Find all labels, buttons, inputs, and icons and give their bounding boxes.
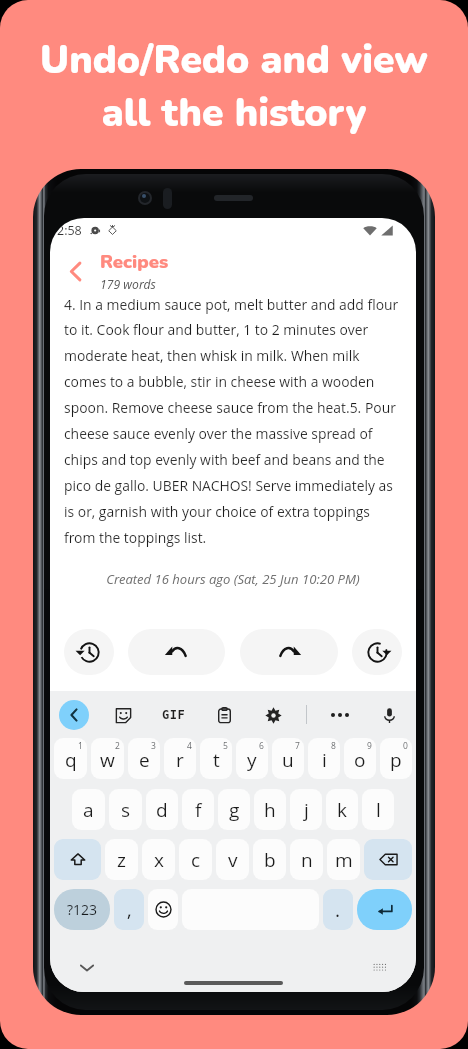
button[interactable]: More options: [324, 699, 356, 731]
button[interactable]: .: [323, 889, 353, 930]
button[interactable]: 0: [380, 738, 412, 779]
button[interactable]: Enter: [357, 889, 412, 930]
button[interactable]: Switch keyboard: [367, 956, 391, 980]
button[interactable]: Hide keyboard: [75, 956, 99, 980]
button[interactable]: c: [179, 839, 212, 880]
other: Backspace: [379, 850, 398, 869]
button[interactable]: a: [72, 789, 105, 830]
button[interactable]: 9: [344, 738, 376, 779]
button[interactable]: ,: [114, 889, 144, 930]
button[interactable]: Close toolbar: [59, 700, 89, 730]
button[interactable]: h: [254, 789, 286, 830]
button[interactable]: Redo: [240, 629, 338, 675]
staticText: b: [264, 847, 276, 873]
button[interactable]: Shift: [54, 839, 101, 880]
staticText: 7: [295, 740, 300, 752]
staticText: 4. In a medium sauce pot, melt butter an…: [64, 295, 402, 547]
staticText: 8: [331, 740, 336, 752]
button[interactable]: Back: [55, 251, 95, 291]
button[interactable]: v: [216, 839, 249, 880]
staticText: c: [191, 847, 201, 873]
staticText: Recipes: [100, 249, 169, 274]
staticText: e: [139, 747, 150, 773]
button[interactable]: f: [182, 789, 214, 830]
button[interactable]: 6: [236, 738, 268, 779]
button[interactable]: Backspace: [364, 839, 412, 880]
other: Emoji: [155, 901, 172, 918]
staticText: w: [100, 747, 115, 773]
button[interactable]: l: [362, 789, 394, 830]
staticText: i: [322, 747, 327, 773]
staticText: 9: [367, 740, 372, 752]
staticText: 4: [187, 740, 192, 752]
button[interactable]: n: [290, 839, 323, 880]
staticText: j: [304, 797, 309, 823]
button[interactable]: Restore version: [352, 629, 402, 675]
button[interactable]: g: [218, 789, 250, 830]
button[interactable]: GIF: [157, 698, 191, 732]
staticText: x: [154, 847, 164, 873]
staticText: 3: [151, 740, 156, 752]
button[interactable]: Version history: [64, 629, 114, 675]
button[interactable]: Clipboard: [208, 699, 240, 731]
staticText: 1: [78, 740, 83, 752]
staticText: 2:58: [57, 222, 82, 239]
staticText: ?123: [67, 900, 98, 919]
button[interactable]: 8: [308, 738, 340, 779]
button[interactable]: 1: [54, 738, 87, 779]
button[interactable]: Voice input: [373, 699, 405, 731]
staticText: 6: [259, 740, 264, 752]
button[interactable]: s: [109, 789, 142, 830]
button[interactable]: 4: [164, 738, 196, 779]
staticText: GIF: [162, 708, 186, 722]
staticText: o: [354, 747, 366, 773]
staticText: z: [117, 847, 126, 873]
staticText: h: [264, 797, 276, 823]
button[interactable]: Settings: [257, 699, 289, 731]
staticText: p: [390, 747, 402, 773]
staticText: t: [213, 747, 220, 773]
staticText: q: [65, 747, 77, 773]
button[interactable]: 5: [200, 738, 232, 779]
button[interactable]: d: [146, 789, 178, 830]
other: Shift: [70, 852, 86, 868]
button[interactable]: x: [142, 839, 175, 880]
staticText: Undo/Redo and view all the history: [0, 34, 468, 140]
staticText: l: [376, 797, 381, 823]
staticText: r: [176, 747, 184, 773]
staticText: u: [282, 747, 294, 773]
staticText: .: [335, 897, 341, 923]
button[interactable]: 7: [272, 738, 304, 779]
staticText: v: [228, 847, 238, 873]
button[interactable]: m: [327, 839, 360, 880]
staticText: m: [335, 847, 353, 873]
button[interactable]: Emoji: [148, 889, 178, 930]
staticText: k: [337, 797, 347, 823]
staticText: Created 16 hours ago (Sat, 25 Jun 10:20 …: [50, 570, 416, 588]
button[interactable]: 2: [91, 738, 124, 779]
staticText: ,: [127, 897, 132, 923]
staticText: n: [301, 847, 313, 873]
button[interactable]: Undo: [128, 629, 225, 675]
staticText: s: [121, 797, 131, 823]
staticText: g: [229, 797, 240, 823]
other: Enter: [376, 901, 394, 919]
button[interactable]: z: [105, 839, 138, 880]
staticText: f: [195, 797, 202, 823]
button[interactable]: k: [326, 789, 358, 830]
button[interactable]: j: [290, 789, 322, 830]
staticText: 179 words: [100, 276, 156, 293]
staticText: 2: [115, 740, 120, 752]
button[interactable]: Stickers: [107, 699, 139, 731]
button[interactable]: b: [253, 839, 286, 880]
staticText: d: [156, 797, 168, 823]
staticText: 0: [403, 740, 408, 752]
button[interactable]: ?123: [54, 889, 110, 930]
staticText: 5: [223, 740, 228, 752]
button[interactable]: 3: [128, 738, 160, 779]
staticText: y: [247, 747, 257, 773]
staticText: a: [83, 797, 94, 823]
